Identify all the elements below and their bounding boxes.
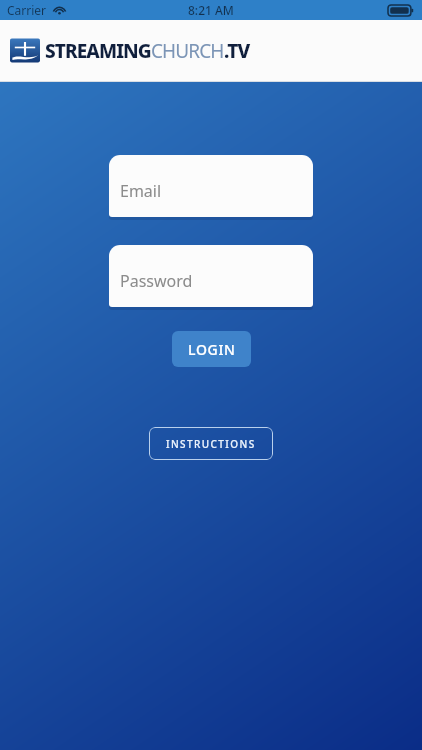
- button[interactable]: LOGIN: [172, 331, 251, 367]
- staticText: STREAMING: [45, 38, 151, 64]
- button[interactable]: Email: [109, 155, 313, 217]
- staticText: Carrier: [7, 2, 47, 18]
- staticText: Password: [120, 270, 193, 292]
- staticText: CHURCH: [151, 38, 224, 64]
- other: StreamingChurch.tv logo: [10, 36, 40, 66]
- staticText: 8:21 AM: [188, 2, 234, 18]
- staticText: LOGIN: [188, 340, 236, 359]
- button[interactable]: INSTRUCTIONS: [149, 427, 273, 460]
- button[interactable]: Password: [109, 245, 313, 307]
- staticText: Email: [120, 180, 162, 202]
- staticText: .TV: [224, 38, 250, 64]
- staticText: INSTRUCTIONS: [166, 437, 256, 451]
